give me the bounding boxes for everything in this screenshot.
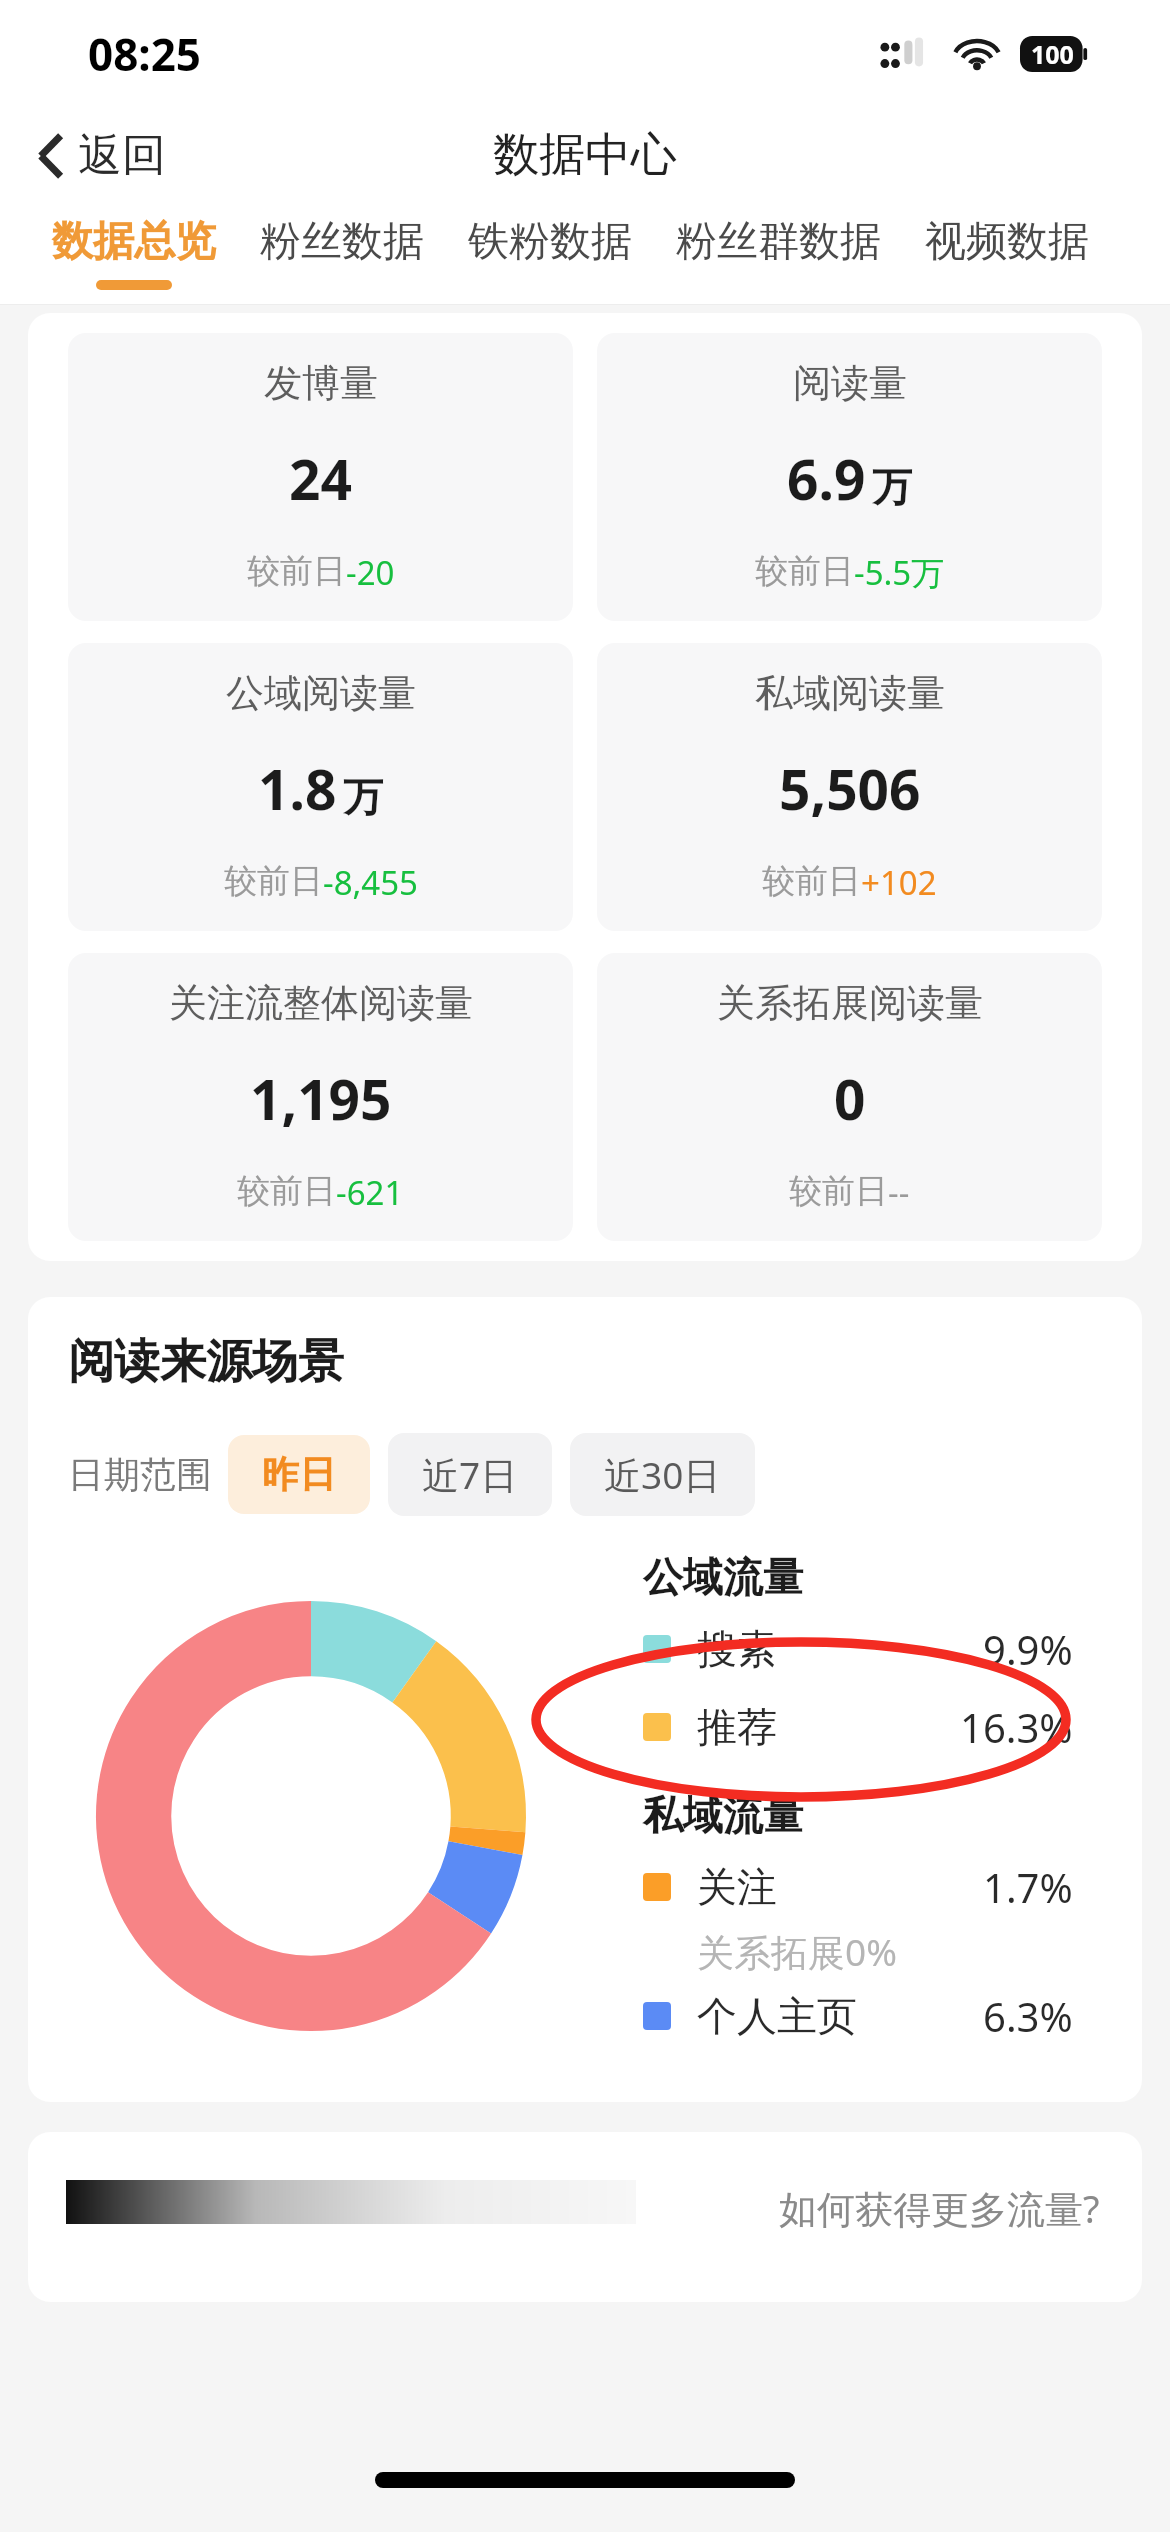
button[interactable]: 粉丝数据 <box>238 210 446 286</box>
staticText: 数据中心 <box>493 126 677 184</box>
staticText: 关系拓展阅读量 <box>717 979 983 1027</box>
button[interactable]: 近7日 <box>388 1433 552 1516</box>
staticText: 6.3% <box>983 1989 1073 2043</box>
button[interactable]: 近30日 <box>570 1433 755 1516</box>
staticText: 9.9% <box>983 1622 1073 1676</box>
staticText: 较前日 <box>789 1170 888 1212</box>
staticText: 发博量 <box>264 359 378 407</box>
staticText: 阅读来源场景 <box>68 1333 344 1391</box>
staticText: 私域流量 <box>643 1790 803 1840</box>
staticText: 较前日 <box>237 1170 336 1212</box>
staticText: 个人主页 <box>697 1991 857 2041</box>
staticText: 日期范围 <box>68 1452 212 1497</box>
staticText: 万 <box>343 772 383 822</box>
staticText: 1.7% <box>983 1860 1073 1914</box>
button[interactable]: 私域阅读量 <box>597 643 1102 931</box>
staticText: -- <box>888 1170 910 1215</box>
staticText: -8,455 <box>323 860 418 905</box>
staticText: 24 <box>289 441 352 516</box>
staticText: 搜索 <box>697 1624 777 1674</box>
staticText: 万 <box>872 462 912 512</box>
button[interactable]: 数据总览 <box>30 210 238 296</box>
staticText: -20 <box>346 550 395 595</box>
staticText: 粉丝数据 <box>260 216 424 268</box>
staticText: 数据总览 <box>52 216 216 268</box>
staticText: 昨日 <box>262 1451 336 1498</box>
staticText: 私域阅读量 <box>755 669 945 717</box>
staticText: 阅读量 <box>793 359 907 407</box>
staticText: 近30日 <box>604 1449 721 1500</box>
staticText: 如何获得更多流量? <box>779 2182 1100 2234</box>
staticText: 较前日 <box>224 860 323 902</box>
staticText: 推荐 <box>697 1702 777 1752</box>
button[interactable]: 关注 <box>643 1854 1093 1920</box>
staticText: 08:25 <box>88 24 202 84</box>
staticText: 6.9 <box>787 441 866 516</box>
staticText: 较前日 <box>755 550 854 592</box>
staticText: 关系拓展0% <box>697 1926 897 1977</box>
button[interactable]: 视频数据 <box>903 210 1111 286</box>
button[interactable]: 推荐 <box>643 1694 1093 1760</box>
staticText: 100 <box>1031 37 1074 71</box>
staticText: 关注 <box>697 1862 777 1912</box>
button[interactable]: 搜索 <box>643 1616 1093 1682</box>
staticText: 关注流整体阅读量 <box>169 979 473 1027</box>
staticText: 公域阅读量 <box>226 669 416 717</box>
staticText: 1,195 <box>250 1061 392 1136</box>
button[interactable]: 公域阅读量 <box>68 643 573 931</box>
button[interactable]: 阅读量 <box>597 333 1102 621</box>
staticText: 较前日 <box>762 860 861 902</box>
button[interactable]: 铁粉数据 <box>446 210 654 286</box>
button[interactable]: 如何获得更多流量? <box>773 2176 1106 2240</box>
button[interactable]: 关系拓展阅读量 <box>597 953 1102 1241</box>
staticText: +102 <box>861 860 937 905</box>
staticText: -621 <box>336 1170 404 1215</box>
staticText: 粉丝群数据 <box>676 216 881 268</box>
staticText: 16.3% <box>960 1700 1073 1754</box>
staticText: 近7日 <box>422 1449 518 1500</box>
staticText: 返回 <box>78 128 166 183</box>
staticText: -5.5万 <box>854 550 945 595</box>
button[interactable]: 关注流整体阅读量 <box>68 953 573 1241</box>
staticText: 0 <box>834 1061 866 1136</box>
staticText: 铁粉数据 <box>468 216 632 268</box>
other: Back <box>36 133 66 179</box>
staticText: 视频数据 <box>925 216 1089 268</box>
staticText: 5,506 <box>779 751 921 826</box>
staticText: 较前日 <box>247 550 346 592</box>
button[interactable]: 昨日 <box>228 1435 370 1514</box>
staticText: 公域流量 <box>643 1552 803 1602</box>
button[interactable]: 粉丝群数据 <box>654 210 903 286</box>
button[interactable]: Back <box>0 116 190 195</box>
staticText: 1.8 <box>258 751 337 826</box>
button[interactable]: 个人主页 <box>643 1983 1093 2049</box>
button[interactable]: 发博量 <box>68 333 573 621</box>
